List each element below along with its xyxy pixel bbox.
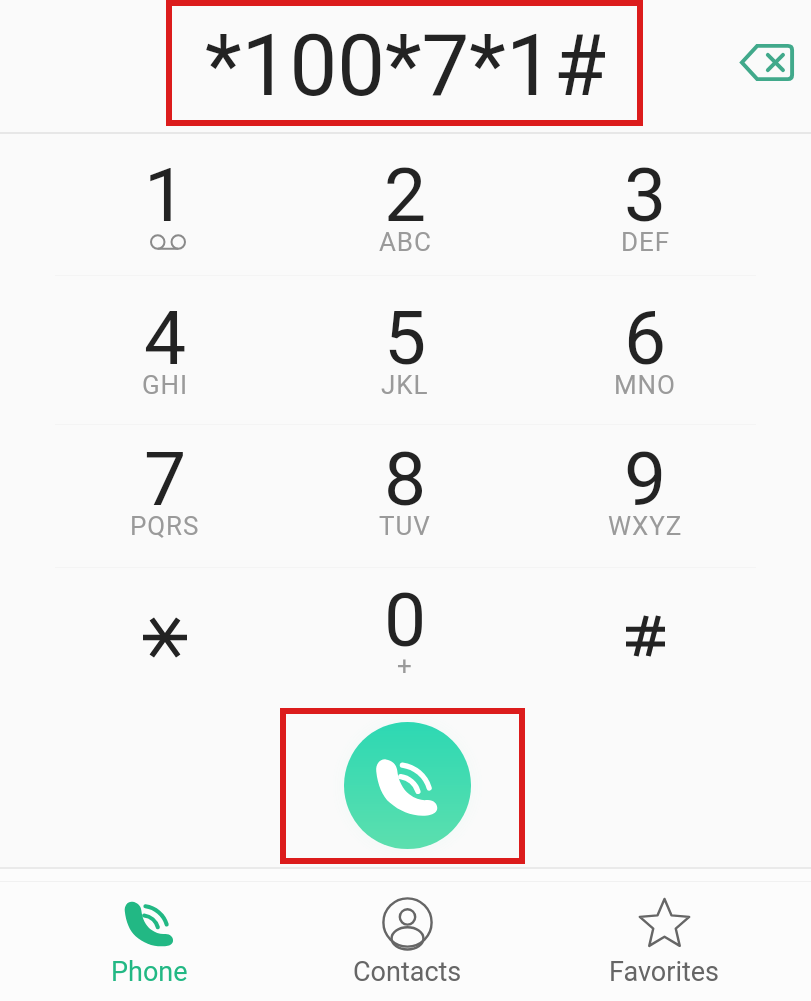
staticText: 5: [384, 294, 427, 382]
staticText: 4: [144, 294, 187, 382]
staticText: TUV: [379, 511, 431, 541]
staticText: +: [397, 651, 413, 681]
staticText: Contacts: [353, 956, 462, 988]
button[interactable]: Call: [344, 722, 471, 849]
staticText: MNO: [614, 370, 676, 400]
button[interactable]: Contacts: [297, 869, 517, 1001]
button[interactable]: 3: [525, 140, 765, 282]
staticText: WXYZ: [608, 511, 683, 541]
button[interactable]: 9: [525, 424, 765, 566]
staticText: 7: [144, 435, 187, 523]
button[interactable]: Phone: [39, 869, 259, 1001]
button[interactable]: Favorites: [554, 869, 774, 1001]
button[interactable]: 2: [285, 140, 525, 282]
staticText: Favorites: [609, 956, 720, 988]
staticText: JKL: [381, 370, 429, 400]
staticText: ABC: [379, 227, 432, 257]
staticText: 8: [384, 435, 427, 523]
staticText: *100*7*1#: [205, 16, 607, 116]
staticText: 3: [624, 151, 667, 239]
staticText: GHI: [142, 370, 189, 400]
button[interactable]: [525, 565, 765, 707]
button[interactable]: 1: [45, 140, 285, 282]
staticText: 6: [624, 294, 667, 382]
staticText: 1: [144, 151, 187, 239]
staticText: DEF: [621, 227, 670, 257]
button[interactable]: 5: [285, 283, 525, 425]
staticText: 0: [384, 576, 427, 664]
button[interactable]: 0: [285, 565, 525, 707]
button[interactable]: Backspace: [731, 26, 803, 98]
button[interactable]: 8: [285, 424, 525, 566]
button[interactable]: 7: [45, 424, 285, 566]
button[interactable]: 6: [525, 283, 765, 425]
button[interactable]: 4: [45, 283, 285, 425]
button[interactable]: [45, 565, 285, 707]
staticText: 9: [624, 435, 667, 523]
staticText: 2: [384, 151, 427, 239]
staticText: PQRS: [130, 511, 200, 541]
staticText: Phone: [111, 956, 188, 988]
